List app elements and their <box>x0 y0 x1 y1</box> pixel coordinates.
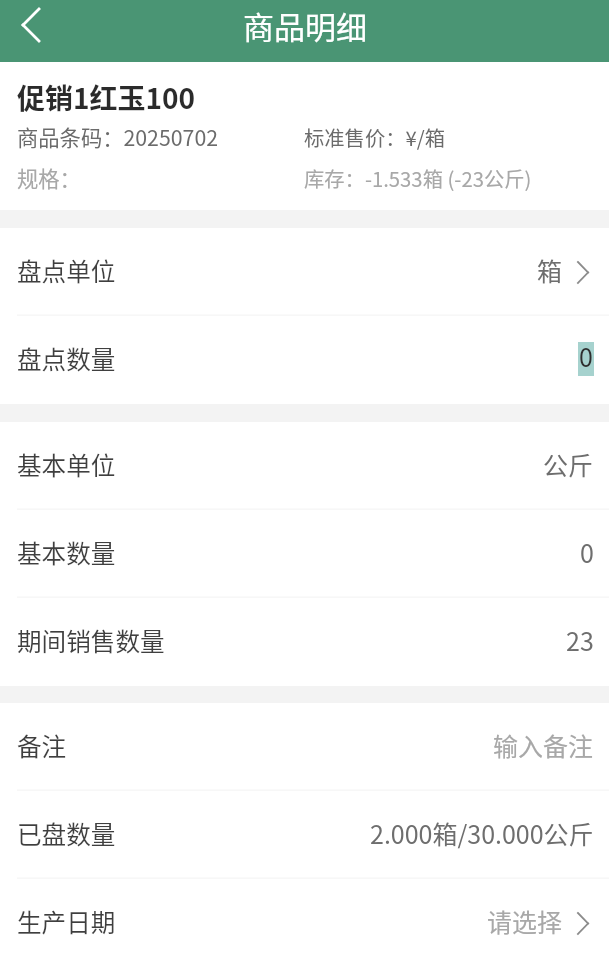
button[interactable]: 基本数量 <box>0 510 609 598</box>
button[interactable]: 备注 <box>0 703 609 791</box>
staticText: 基本单位 <box>17 446 116 482</box>
button[interactable]: 盘点数量 <box>0 316 609 404</box>
staticText: 2.000箱/30.000公斤 <box>370 815 594 851</box>
staticText: 盘点数量 <box>17 340 116 376</box>
staticText: 输入备注 <box>493 727 594 763</box>
staticText: 期间销售数量 <box>17 622 165 658</box>
staticText: 标准售价：¥/箱 <box>304 122 446 151</box>
staticText: 箱 <box>537 252 563 288</box>
staticText: 23 <box>566 622 594 658</box>
button[interactable]: 已盘数量 <box>0 791 609 879</box>
button[interactable]: 期间销售数量 <box>0 598 609 686</box>
button[interactable]: Back <box>0 0 62 50</box>
staticText: 请选择 <box>487 903 563 939</box>
staticText: 生产日期 <box>17 903 116 939</box>
staticText: 商品条码：20250702 <box>17 121 219 152</box>
staticText: 0 <box>579 338 593 372</box>
staticText: 盘点单位 <box>17 252 116 288</box>
staticText: 库存：-1.533箱 (-23公斤) <box>304 163 532 192</box>
staticText: 商品明细 <box>243 3 367 48</box>
staticText: 备注 <box>17 727 67 763</box>
staticText: 0 <box>580 534 594 570</box>
staticText: 促销1红玉100 <box>17 77 196 118</box>
staticText: 已盘数量 <box>17 815 116 851</box>
staticText: 规格： <box>17 162 81 193</box>
button[interactable]: 基本单位 <box>0 422 609 510</box>
button[interactable]: 生产日期 <box>0 879 609 960</box>
staticText: 公斤 <box>543 446 594 482</box>
staticText: 基本数量 <box>17 534 116 570</box>
button[interactable]: 盘点单位 <box>0 228 609 316</box>
